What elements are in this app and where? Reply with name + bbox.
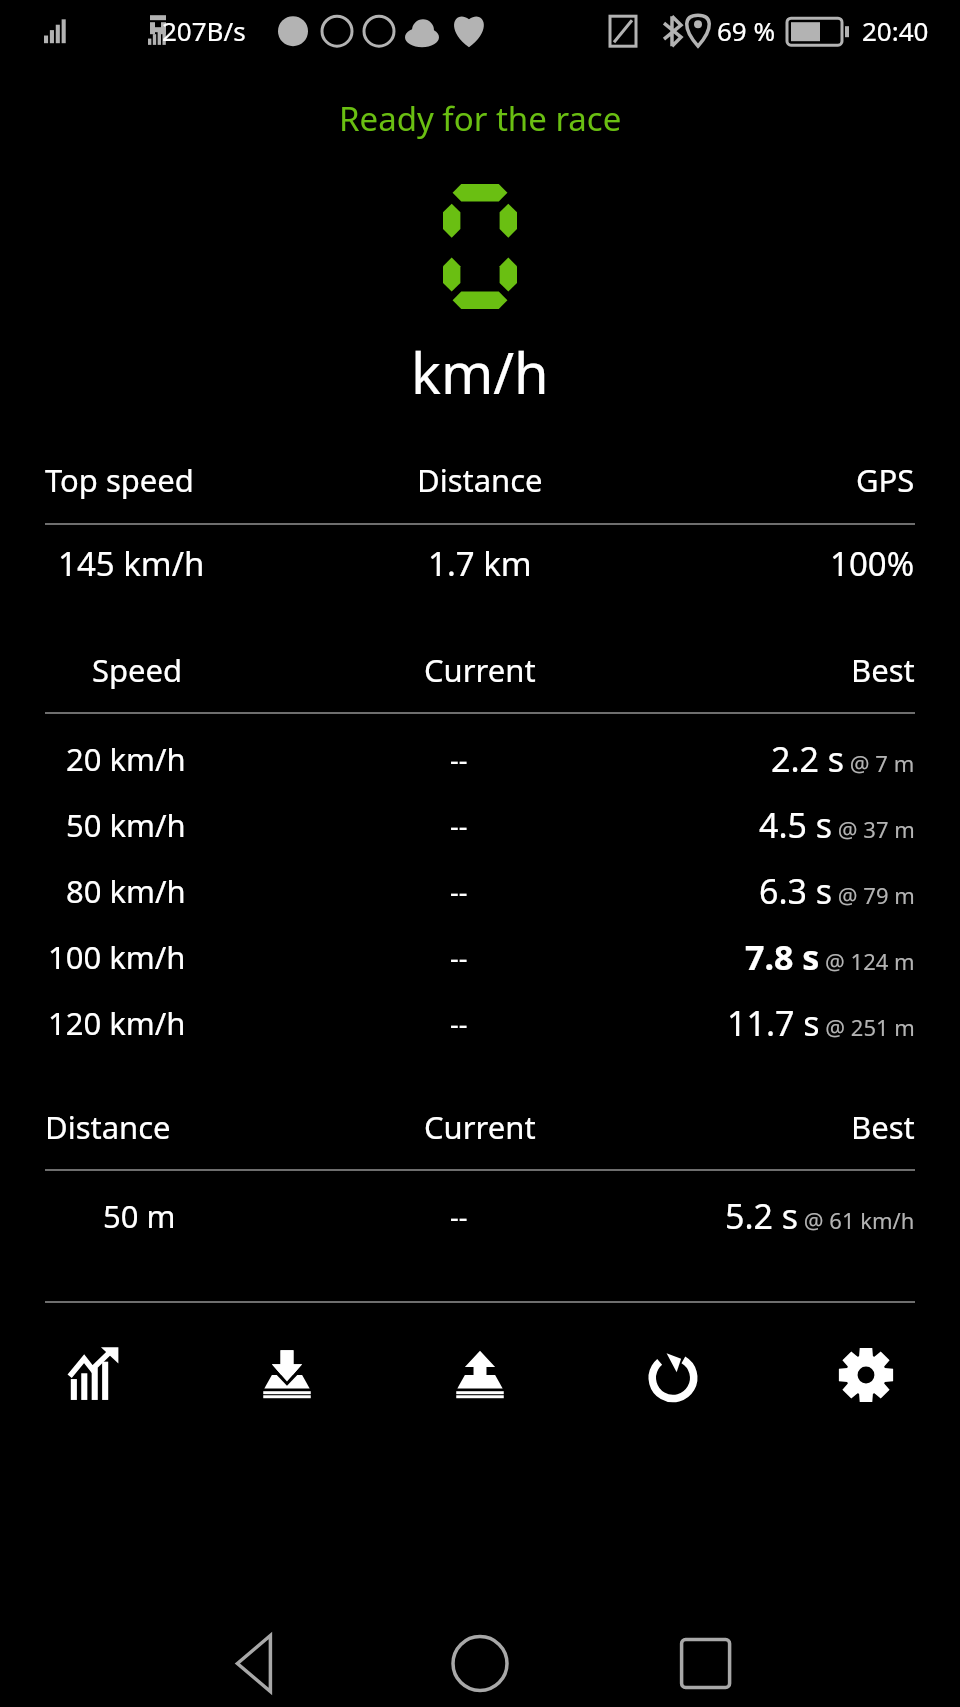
- staticText: 100%: [830, 541, 915, 586]
- staticText: 100 km/h: [48, 936, 186, 978]
- staticText: Current: [424, 649, 536, 691]
- button[interactable]: Settings: [824, 1333, 908, 1417]
- button[interactable]: 100 km/h: [45, 924, 915, 990]
- button[interactable]: 120 km/h: [45, 990, 915, 1056]
- button[interactable]: 80 km/h: [45, 858, 915, 924]
- staticText: 69 %: [717, 13, 776, 48]
- staticText: 6.3 s @ 79 m: [759, 868, 915, 914]
- staticText: --: [450, 807, 468, 844]
- staticText: 50 km/h: [66, 804, 186, 846]
- button[interactable]: 50 m: [45, 1183, 915, 1249]
- button[interactable]: Statistics: [52, 1333, 136, 1417]
- staticText: 1.7 km: [428, 541, 532, 586]
- button[interactable]: 20 km/h: [45, 726, 915, 792]
- staticText: km/h: [411, 334, 549, 410]
- staticText: 50 m: [103, 1195, 176, 1237]
- staticText: 20:40: [862, 13, 929, 48]
- staticText: 7.8 s @ 124 m: [745, 934, 915, 980]
- staticText: 20 km/h: [66, 738, 186, 780]
- staticText: Distance: [417, 459, 543, 501]
- staticText: --: [450, 1198, 468, 1235]
- staticText: Ready for the race: [339, 96, 622, 141]
- staticText: --: [450, 939, 468, 976]
- staticText: Best: [851, 649, 915, 691]
- button[interactable]: Import: [245, 1333, 329, 1417]
- staticText: Speed: [92, 649, 183, 691]
- staticText: --: [450, 1005, 468, 1042]
- staticText: 5.2 s @ 61 km/h: [725, 1193, 915, 1239]
- button[interactable]: Export: [438, 1333, 522, 1417]
- staticText: 145 km/h: [58, 541, 205, 586]
- button[interactable]: Reset: [631, 1333, 715, 1417]
- staticText: 4.5 s @ 37 m: [759, 802, 915, 848]
- staticText: Best: [851, 1106, 915, 1148]
- staticText: 2.2 s @ 7 m: [771, 736, 915, 782]
- button[interactable]: 50 km/h: [45, 792, 915, 858]
- staticText: Current: [424, 1106, 536, 1148]
- staticText: 80 km/h: [66, 870, 186, 912]
- staticText: Top speed: [45, 459, 194, 501]
- staticText: --: [450, 873, 468, 910]
- staticText: GPS: [856, 459, 915, 501]
- staticText: Distance: [45, 1106, 171, 1148]
- staticText: --: [450, 741, 468, 778]
- staticText: 120 km/h: [48, 1002, 186, 1044]
- staticText: 207B/s: [162, 13, 246, 48]
- staticText: 11.7 s @ 251 m: [727, 1000, 915, 1046]
